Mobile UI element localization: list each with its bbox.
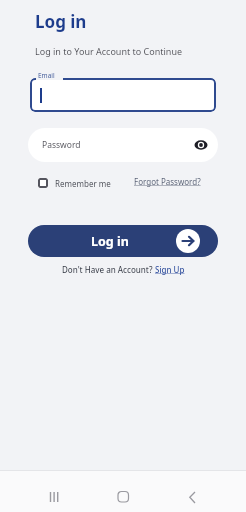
button[interactable] [44,486,66,508]
button[interactable] [38,178,48,188]
staticText: Forgot Password? [134,176,201,187]
staticText: Sign Up [155,264,185,275]
button[interactable] [30,78,216,112]
staticText: Log in to Your Account to Continue [35,45,183,57]
staticText: Remember me [55,178,111,189]
staticText: Log in [91,233,129,250]
button[interactable]: Log in [28,225,218,257]
button[interactable] [112,486,134,508]
button[interactable]: Sign Up [155,264,185,275]
button[interactable]: Password [28,128,218,162]
button[interactable]: Forgot Password? [134,176,201,187]
staticText: Log in [35,10,87,33]
staticText: Password [42,139,81,151]
button[interactable] [193,137,209,153]
button[interactable] [180,486,202,508]
staticText: Email [38,71,55,80]
staticText: Don't Have an Account? [62,264,155,275]
